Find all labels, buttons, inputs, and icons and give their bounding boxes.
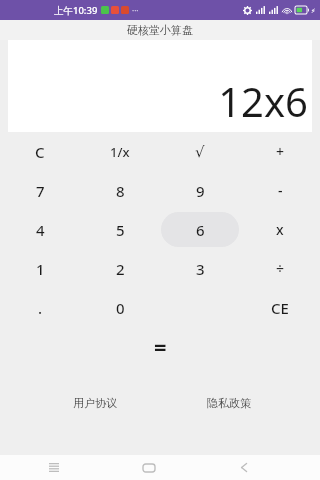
button[interactable]: 用户协议 [69,393,121,413]
button[interactable]: + [241,134,319,169]
staticText: 2 [116,259,125,279]
staticText: √ [195,143,205,160]
button[interactable]: 隐私政策 [203,393,255,413]
button[interactable]: 1/x [81,134,159,169]
staticText: 12x6 [218,74,308,128]
staticText: = [154,331,167,361]
button[interactable]: CE [241,290,319,325]
staticText: 隐私政策 [207,396,251,410]
staticText: 6 [196,220,205,240]
staticText: - [278,181,283,200]
button[interactable]: 1 [1,251,79,286]
staticText: 5 [116,220,125,240]
staticText: 4 [36,220,45,240]
staticText: 用户协议 [73,396,117,410]
staticText: ⚡ [311,7,316,14]
button[interactable]: 4 [1,212,79,247]
staticText: ··· [132,5,139,16]
button[interactable]: 8 [81,173,159,208]
button[interactable]: ÷ [241,251,319,286]
staticText: . [38,298,43,318]
staticText: ÷ [276,259,285,278]
button[interactable]: 0 [81,290,159,325]
button[interactable]: 2 [81,251,159,286]
staticText: CE [271,298,289,318]
button[interactable]: 9 [161,173,239,208]
button[interactable]: Back [227,455,261,480]
button[interactable]: x [241,212,319,247]
staticText: 9 [196,181,205,201]
staticText: 3 [196,259,205,279]
button[interactable]: Home [132,455,166,480]
button[interactable]: 7 [1,173,79,208]
button[interactable]: 3 [161,251,239,286]
button[interactable]: = [124,327,196,365]
staticText: 1/x [110,143,130,161]
staticText: 8 [116,181,125,201]
staticText: 7 [36,181,45,201]
staticText: 上午10:39 [54,4,98,17]
staticText: 1 [36,259,45,279]
staticText: 0 [116,298,125,318]
staticText: C [35,142,45,162]
button[interactable]: 5 [81,212,159,247]
button[interactable]: 6 [161,212,239,247]
staticText: x [276,220,284,239]
staticText: 硬核堂小算盘 [127,23,193,37]
button[interactable]: C [1,134,79,169]
button[interactable]: Recent apps [37,455,71,480]
button[interactable]: . [1,290,79,325]
staticText: + [276,142,285,161]
button[interactable]: √ [161,134,239,169]
button[interactable]: - [241,173,319,208]
